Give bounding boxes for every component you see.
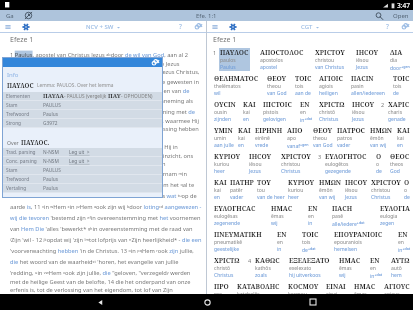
button[interactable]: NCV + SW bbox=[86, 23, 121, 31]
button[interactable]: Unlink bbox=[401, 22, 410, 31]
button[interactable]: ΤΟΥ bbox=[257, 178, 285, 201]
staticText: ΕΥΛΟΓΗCΑC bbox=[214, 204, 256, 213]
button[interactable]: ΑΠΟ bbox=[287, 126, 309, 149]
button[interactable]: Ο bbox=[376, 152, 382, 175]
button[interactable]: ΕΥΛΟΓΙΑ bbox=[380, 204, 410, 227]
button[interactable]: ΚΑΙ bbox=[214, 178, 227, 201]
staticText: ΧΡΙCΤΟΥ bbox=[315, 48, 345, 57]
button[interactable]: ΕΞΕΛΕΞΑΤΟ bbox=[289, 256, 330, 279]
button[interactable]: ΤΟΙC bbox=[302, 230, 319, 253]
button[interactable]: Unlink bbox=[194, 22, 203, 31]
button[interactable]: ΧΡΙCΤΩ bbox=[214, 256, 240, 279]
button[interactable]: ΕΥΛΟΓΗCΑC bbox=[214, 204, 256, 227]
button[interactable]: ΤΟΙC bbox=[295, 74, 312, 97]
button[interactable]: ΚΑΙ bbox=[238, 126, 251, 149]
button[interactable]: ΠΑΤΡΟC bbox=[337, 126, 366, 149]
button[interactable]: ΕΝ bbox=[370, 256, 382, 279]
staticText: Christus bbox=[281, 168, 301, 175]
button[interactable]: ΠΑΥΛΟC bbox=[220, 48, 249, 71]
button[interactable]: ΚΑΤΑΒΟΛΗC bbox=[237, 282, 280, 294]
staticText: Paulus bbox=[220, 64, 236, 71]
button[interactable]: ΤΟΙC bbox=[393, 74, 410, 97]
button[interactable]: ΥΜΙΝ bbox=[214, 126, 234, 149]
button[interactable]: ΕΝ bbox=[300, 100, 312, 123]
button[interactable]: ΙΗCΟΥ bbox=[352, 100, 375, 123]
staticText: Strong bbox=[6, 120, 22, 127]
button[interactable]: ΘΕΟC bbox=[390, 152, 410, 175]
button[interactable]: Back bbox=[93, 295, 107, 309]
button[interactable]: ΚΑΙ bbox=[397, 126, 410, 149]
button[interactable]: ΔΙΑ bbox=[390, 48, 410, 71]
button[interactable]: CGT bbox=[301, 23, 320, 31]
button[interactable]: ΚΥΡΙΟΥ bbox=[288, 178, 315, 201]
button[interactable]: Help bbox=[179, 22, 182, 31]
button[interactable]: Settings bbox=[228, 22, 238, 32]
button[interactable]: ΙΗCΟΥ bbox=[249, 152, 272, 175]
button[interactable]: Link bbox=[151, 58, 160, 67]
button[interactable]: ΗΜΑC bbox=[354, 282, 376, 294]
button[interactable]: ΚΟCΜΟΥ bbox=[288, 282, 319, 294]
button[interactable]: ΟΥCΙΝ bbox=[214, 100, 236, 123]
button[interactable]: Open bbox=[393, 12, 409, 20]
button[interactable]: ΧΡΙCΤΩ bbox=[319, 100, 345, 123]
button[interactable]: Recents bbox=[306, 295, 320, 309]
staticText: patēr bbox=[230, 187, 243, 194]
button[interactable]: ΕΝ bbox=[277, 230, 287, 253]
button[interactable]: ΕΝ bbox=[308, 204, 318, 227]
button[interactable]: ΕΥΛΟΓΗΤΟC bbox=[325, 152, 367, 175]
button[interactable]: Leg uit > bbox=[69, 149, 90, 156]
button[interactable]: Ga bbox=[6, 12, 14, 20]
staticText: Elementen bbox=[6, 93, 31, 100]
staticText: en bbox=[214, 194, 220, 201]
button[interactable]: ΚΥΡΙΟΥ bbox=[214, 152, 241, 175]
staticText: ΕΝ bbox=[398, 230, 408, 239]
button[interactable]: ΧΑΡΙC bbox=[388, 100, 410, 123]
button[interactable]: Settings bbox=[21, 22, 31, 32]
button[interactable]: ΠΑCΗ bbox=[332, 204, 365, 227]
button[interactable]: ΙΗCΟΥ bbox=[356, 48, 379, 71]
button[interactable]: Search bbox=[375, 12, 383, 20]
button[interactable]: ΠΡΟ bbox=[214, 282, 229, 294]
button[interactable]: Menu bbox=[3, 22, 13, 32]
button[interactable]: ΑΥΤΩ bbox=[391, 256, 410, 279]
button[interactable]: ΗΜΑC bbox=[339, 256, 361, 279]
button[interactable]: ΑΠΟCΤΟΛΟC bbox=[260, 48, 304, 71]
staticText: ΚΑΙ bbox=[214, 178, 227, 187]
button[interactable]: Home bbox=[200, 295, 214, 309]
staticText: umin bbox=[214, 135, 227, 142]
staticText: zijnden bbox=[214, 116, 232, 123]
button[interactable]: ΧΡΙCΤΟΥ bbox=[281, 152, 311, 175]
button[interactable]: Help bbox=[386, 22, 389, 31]
button[interactable]: ΚΑΘΩC bbox=[255, 256, 280, 279]
button[interactable]: Leg uit > bbox=[69, 158, 90, 165]
button[interactable]: ΕΙΡΗΝΗ bbox=[255, 126, 283, 149]
button[interactable]: ΧΡΙCΤΟΥ bbox=[315, 48, 345, 71]
button[interactable]: ΠΝΕΥΜΑΤΙΚΗ bbox=[214, 230, 262, 253]
button[interactable]: ΙΗCΟΥ bbox=[345, 178, 368, 201]
button[interactable]: ΗΜΩΝ bbox=[319, 178, 342, 201]
button[interactable]: ΗΜΩΝ bbox=[370, 126, 393, 149]
button[interactable]: ΕΙΝΑΙ bbox=[326, 282, 346, 294]
button[interactable]: ΘΕΟΥ bbox=[313, 126, 333, 149]
staticText: eulogia bbox=[380, 213, 398, 220]
button[interactable]: ΕΝ bbox=[398, 230, 410, 253]
button[interactable]: ΗΜΑC bbox=[271, 204, 293, 227]
staticText: ΧΡΙCΤΩ bbox=[214, 256, 240, 265]
staticText: in bbox=[308, 220, 313, 227]
button[interactable]: ΕΠΟΥΡΑΝΙΟΙC bbox=[334, 230, 383, 253]
button[interactable]: ΘΕΟΥ bbox=[267, 74, 287, 97]
button[interactable]: ΠΑΤΗΡ bbox=[230, 178, 254, 201]
staticText: eulogētos bbox=[325, 161, 349, 168]
staticText: van Christus bbox=[315, 64, 345, 71]
button[interactable]: ΠΙCΤΟΙC bbox=[263, 100, 292, 123]
button[interactable]: Menu bbox=[210, 22, 220, 32]
button[interactable]: ΑΓΙΟΙC bbox=[319, 74, 343, 97]
button[interactable]: ΠΑCΙΝ bbox=[351, 74, 385, 97]
button[interactable]: ΑΓΙΟΥC bbox=[384, 282, 410, 294]
button[interactable]: Ο bbox=[404, 178, 410, 201]
button[interactable]: ΧΡΙCΤΟΥ bbox=[371, 178, 401, 201]
button[interactable]: ΚΑΙ bbox=[243, 100, 256, 123]
button[interactable]: History bbox=[24, 11, 33, 20]
staticText: hem bbox=[391, 272, 402, 279]
button[interactable]: ΘΕΛΗΜΑΤΟC bbox=[214, 74, 259, 97]
